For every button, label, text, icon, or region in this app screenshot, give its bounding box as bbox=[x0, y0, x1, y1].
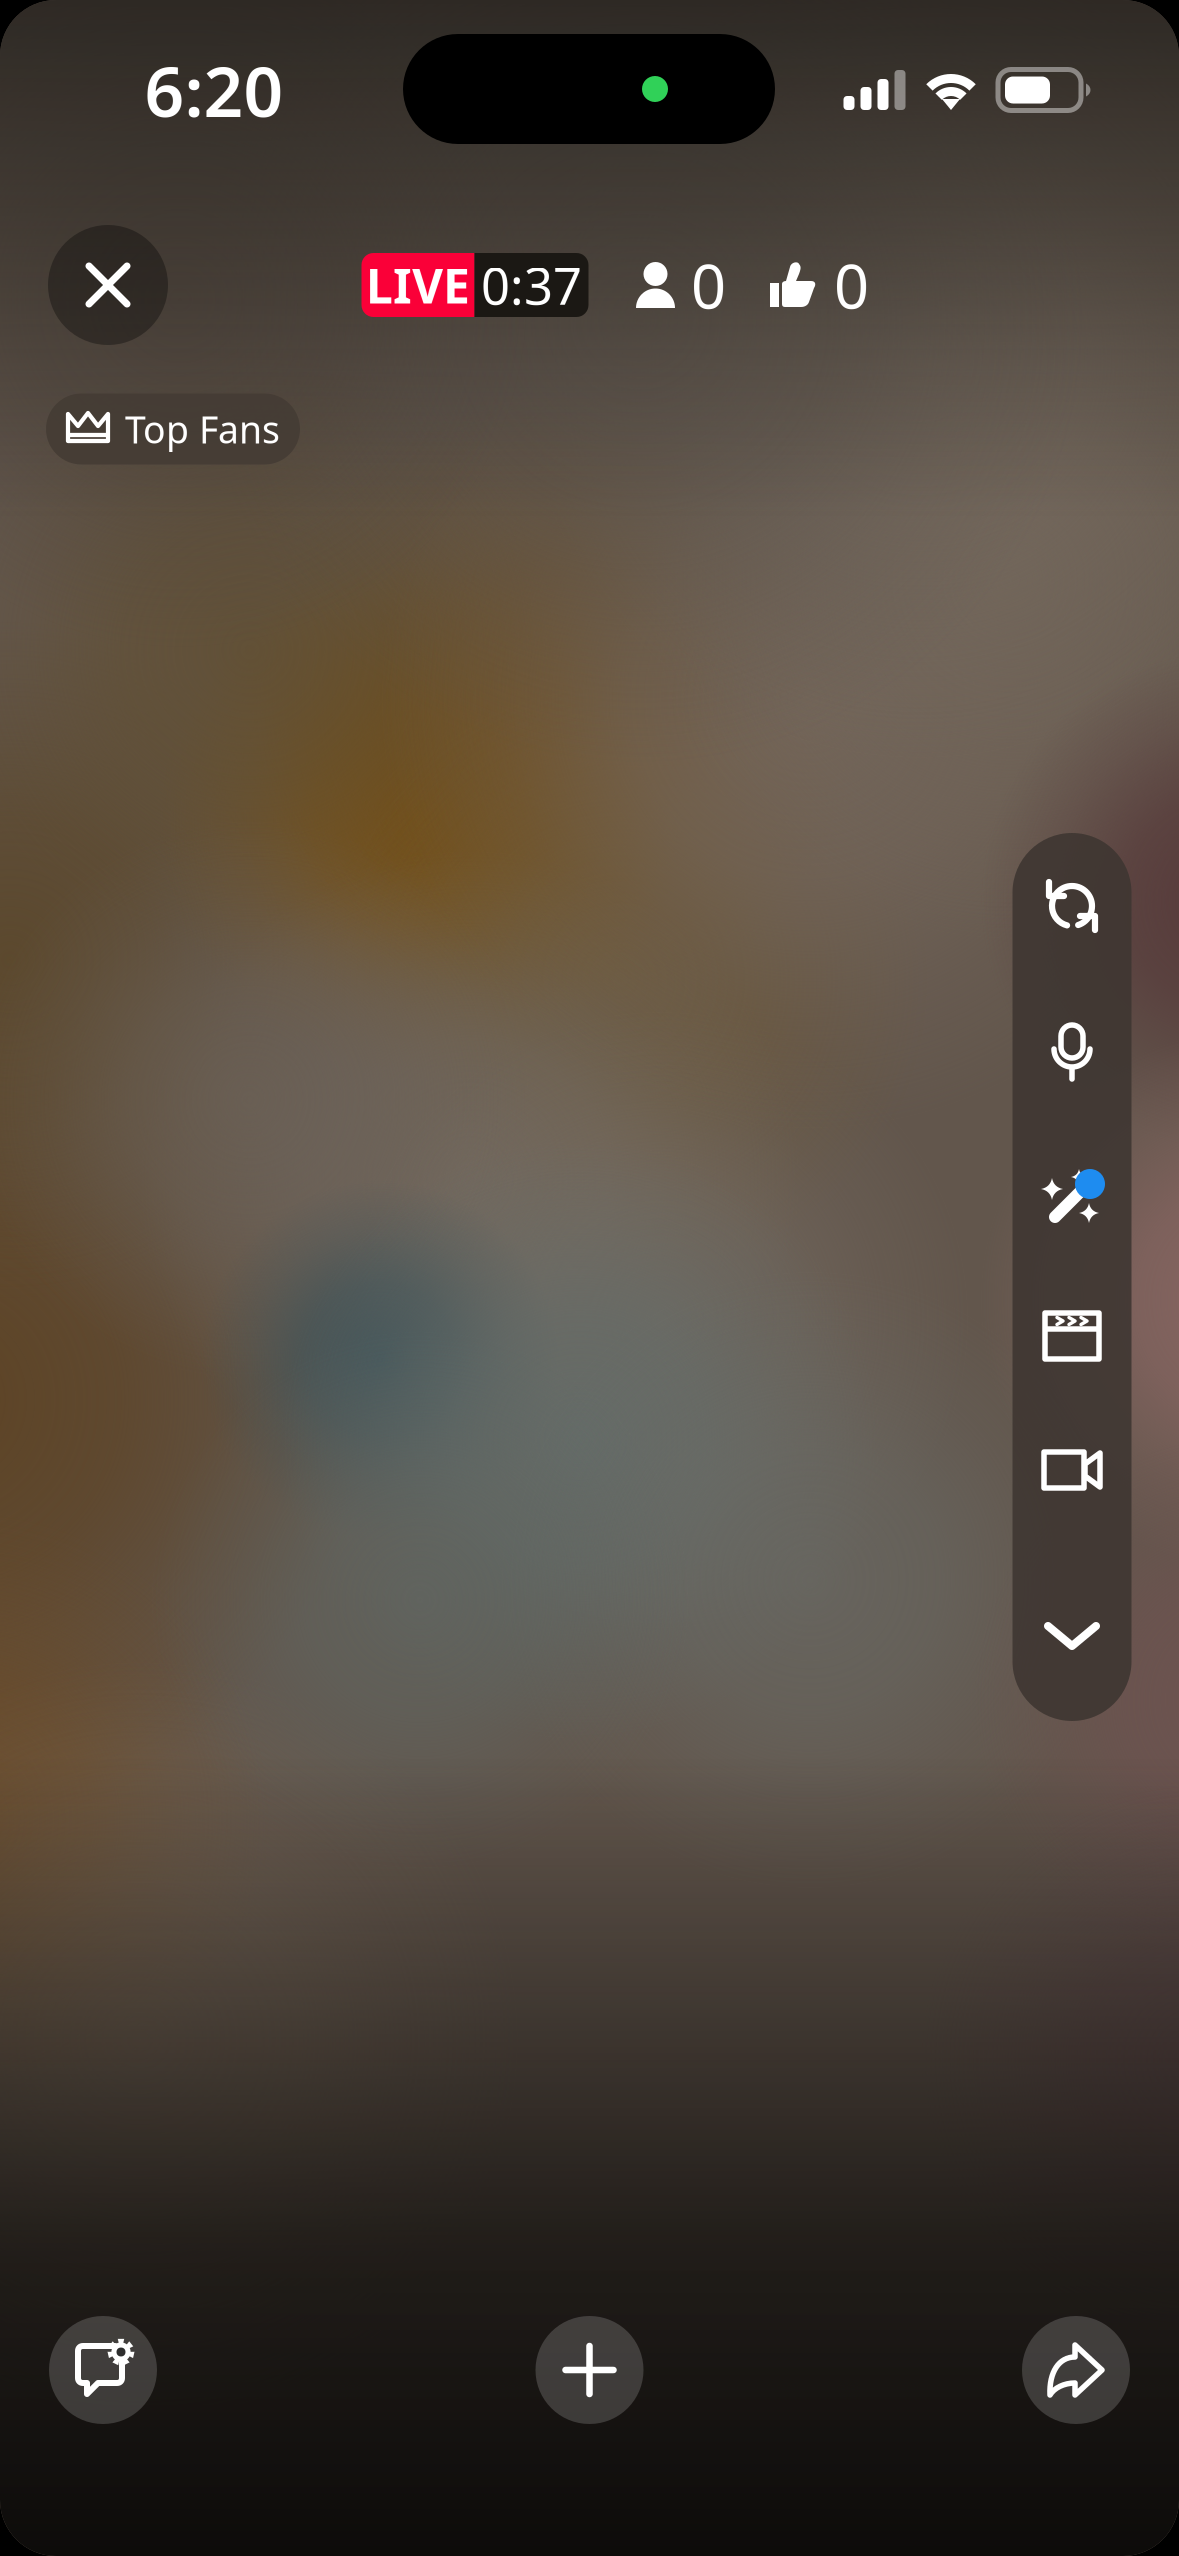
staticText: Top Fans bbox=[125, 404, 280, 454]
button[interactable]: Mute microphone bbox=[1012, 979, 1131, 1125]
button[interactable]: Camera bbox=[1012, 1399, 1131, 1539]
button[interactable]: Comment settings bbox=[49, 2316, 157, 2424]
staticText: 0 bbox=[691, 244, 726, 326]
button[interactable]: Flip camera bbox=[1012, 833, 1131, 979]
staticText: 0:37 bbox=[481, 251, 582, 319]
button[interactable]: Add bbox=[535, 2316, 643, 2424]
button[interactable]: Scenes bbox=[1012, 1271, 1131, 1399]
staticText: 6:20 bbox=[144, 44, 283, 136]
button[interactable]: Top Fans bbox=[46, 393, 300, 464]
staticText: LIVE bbox=[366, 253, 470, 317]
button[interactable]: Close bbox=[48, 225, 168, 345]
button[interactable]: Effects bbox=[1012, 1125, 1131, 1271]
staticText: 0 bbox=[834, 244, 869, 326]
button[interactable]: Share bbox=[1022, 2316, 1130, 2424]
button[interactable]: Collapse toolbar bbox=[1012, 1551, 1131, 1721]
